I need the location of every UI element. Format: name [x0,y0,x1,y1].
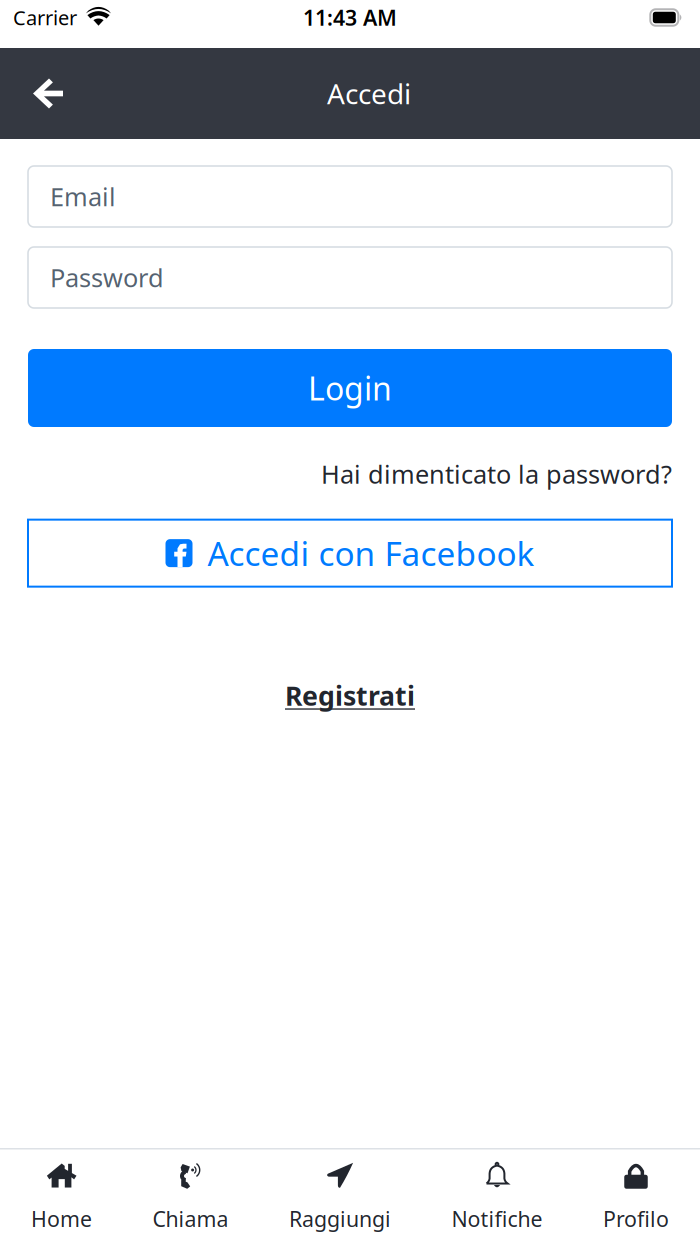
staticText: Registrati [285,678,415,713]
button[interactable]: Raggiungi [289,1148,391,1244]
staticText: Hai dimenticato la password? [321,457,672,491]
staticText: Accedi con Facebook [207,531,534,575]
button[interactable]: Registrati [28,678,672,713]
staticText: Raggiungi [289,1205,391,1233]
staticText: Carrier [13,4,77,31]
button[interactable]: Back [0,48,88,139]
staticText: Profilo [603,1205,669,1233]
button[interactable]: Login [28,349,672,427]
staticText: Login [308,367,392,409]
button[interactable]: Profilo [603,1148,669,1244]
button[interactable]: Hai dimenticato la password? [321,457,672,491]
staticText: Password [50,261,164,294]
staticText: Chiama [152,1205,228,1233]
button[interactable]: Accedi con Facebook [28,520,672,587]
staticText: Accedi [327,75,411,112]
staticText: Email [50,180,116,213]
button[interactable]: Home [31,1148,92,1244]
staticText: 11:43 AM [303,3,397,32]
button[interactable]: Notifiche [451,1148,542,1244]
button[interactable]: Chiama [152,1148,228,1244]
staticText: Home [31,1205,92,1233]
staticText: Notifiche [451,1205,542,1233]
